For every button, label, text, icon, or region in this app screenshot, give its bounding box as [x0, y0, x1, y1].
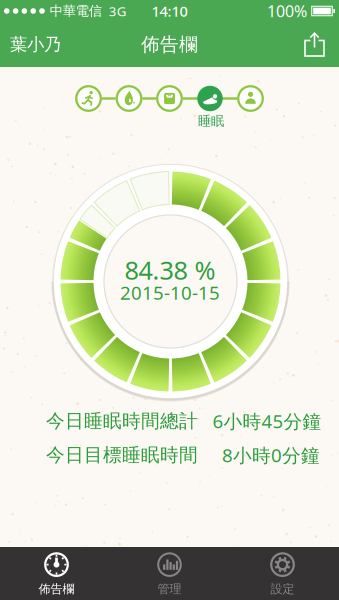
staticText: 100%	[267, 0, 307, 22]
staticText: 葉小乃	[10, 34, 61, 55]
staticText: 84.38 %	[124, 253, 215, 287]
button[interactable]: 設定	[226, 547, 339, 600]
button[interactable]: Weight	[151, 80, 187, 116]
staticText: 今日目標睡眠時間	[46, 443, 198, 466]
button[interactable]: 佈告欄	[0, 547, 113, 600]
button[interactable]: Share	[304, 32, 339, 57]
staticText: 6小時45分鐘	[212, 409, 321, 433]
button[interactable]: 管理	[113, 547, 226, 600]
staticText: 2015-10-15	[120, 280, 220, 305]
staticText: 佈告欄	[38, 582, 74, 596]
staticText: 中華電信	[50, 3, 102, 19]
staticText: 佈告欄	[141, 33, 198, 56]
staticText: 今日睡眠時間總計	[46, 409, 198, 432]
button[interactable]: Calories	[111, 80, 147, 116]
staticText: 8小時0分鐘	[222, 443, 320, 467]
button[interactable]: 葉小乃	[0, 34, 61, 55]
staticText: 設定	[270, 582, 294, 596]
staticText: 睡眠	[198, 113, 224, 129]
button[interactable]: Profile	[232, 80, 268, 116]
button[interactable]: Sleep	[192, 80, 228, 116]
staticText: 管理	[157, 582, 181, 596]
staticText: 3G	[109, 2, 127, 20]
button[interactable]: Run	[70, 80, 106, 116]
staticText: 14:10	[151, 1, 187, 21]
